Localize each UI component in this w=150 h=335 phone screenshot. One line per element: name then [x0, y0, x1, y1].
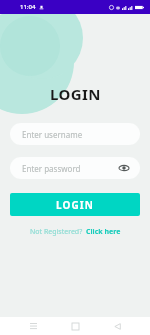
button[interactable]: Show password — [118, 162, 130, 174]
staticText: LOGIN — [56, 198, 95, 212]
button[interactable]: Not Registered? — [0, 227, 150, 237]
staticText: 11:04 — [20, 3, 36, 11]
staticText: Enter username — [22, 129, 83, 140]
staticText: Not Registered? — [30, 227, 83, 237]
button[interactable]: Enter username — [10, 123, 140, 145]
button[interactable]: Recent apps — [26, 319, 40, 333]
button[interactable]: Back — [110, 319, 124, 333]
staticText: Enter password — [22, 163, 81, 174]
button[interactable]: LOGIN — [10, 193, 140, 216]
button[interactable]: Home — [68, 319, 82, 333]
staticText: LOGIN — [50, 84, 101, 104]
button[interactable]: Enter password — [10, 157, 140, 179]
staticText: Click here — [86, 227, 121, 237]
